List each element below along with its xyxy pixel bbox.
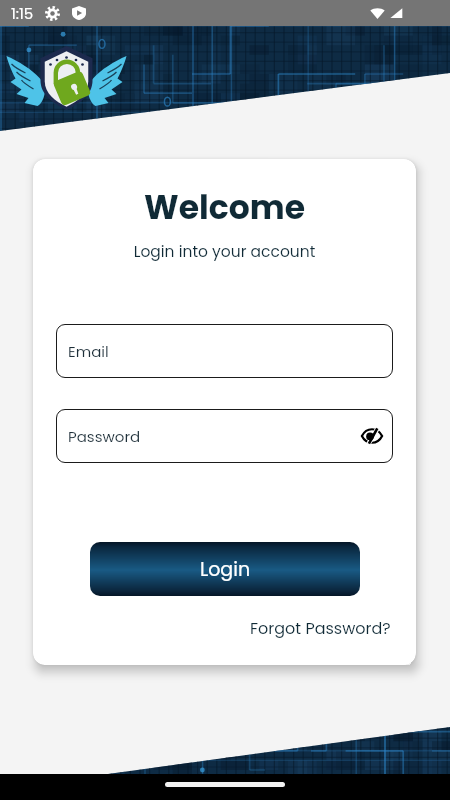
button[interactable]: Login xyxy=(90,542,360,596)
button[interactable]: Password xyxy=(56,409,393,463)
button[interactable]: Forgot Password? xyxy=(250,617,391,639)
staticText: Login into your account xyxy=(33,241,416,263)
staticText: 1:15 xyxy=(11,3,34,24)
button[interactable]: Email xyxy=(56,324,393,378)
staticText: Password xyxy=(68,426,141,447)
staticText: Login xyxy=(200,556,251,583)
staticText: Email xyxy=(68,341,109,362)
staticText: Welcome xyxy=(33,184,416,230)
button[interactable]: Show password xyxy=(357,421,387,451)
